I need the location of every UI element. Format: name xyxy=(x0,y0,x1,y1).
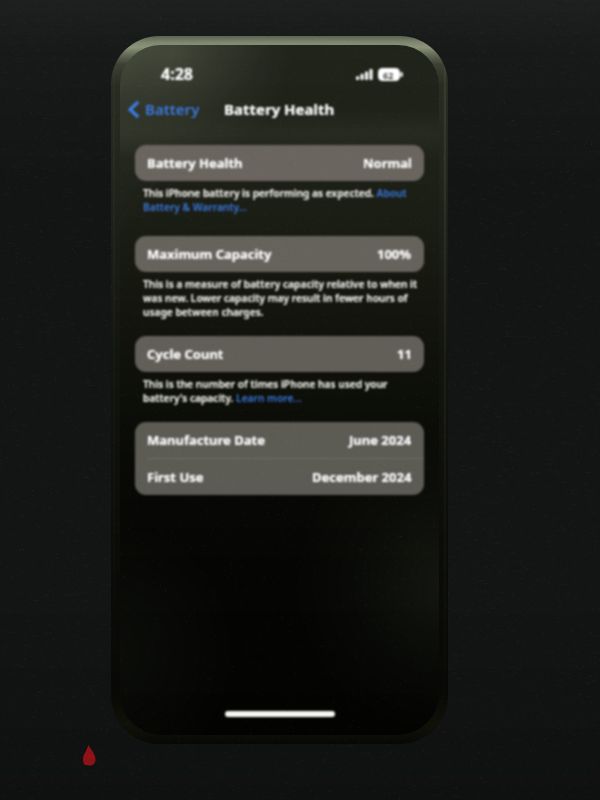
staticText: 100% xyxy=(377,245,412,263)
staticText: 62 xyxy=(383,69,394,81)
staticText: December 2024 xyxy=(312,468,412,486)
button[interactable]: This is the number of times iPhone has u… xyxy=(143,377,388,405)
staticText: Cycle Count xyxy=(147,345,224,363)
staticText: Battery xyxy=(145,99,200,119)
button[interactable]: Battery Health xyxy=(135,145,424,181)
button[interactable]: First Use xyxy=(135,459,424,495)
staticText: This is a measure of battery capacity re… xyxy=(143,277,418,319)
staticText: 11 xyxy=(397,345,412,363)
button[interactable]: This iPhone battery is performing as exp… xyxy=(143,186,407,214)
staticText: Battery Health xyxy=(224,99,335,119)
staticText: Battery Health xyxy=(147,154,243,172)
staticText: 4:28 xyxy=(161,63,193,85)
button[interactable]: Manufacture Date xyxy=(135,422,424,458)
staticText: Maximum Capacity xyxy=(147,245,272,263)
button[interactable]: Maximum Capacity xyxy=(135,236,424,272)
staticText: Normal xyxy=(363,154,412,172)
staticText: Manufacture Date xyxy=(147,431,265,449)
staticText: First Use xyxy=(147,468,204,486)
staticText: June 2024 xyxy=(349,431,412,449)
button[interactable]: Cycle Count xyxy=(135,336,424,372)
button[interactable]: Back to Battery xyxy=(123,96,206,122)
